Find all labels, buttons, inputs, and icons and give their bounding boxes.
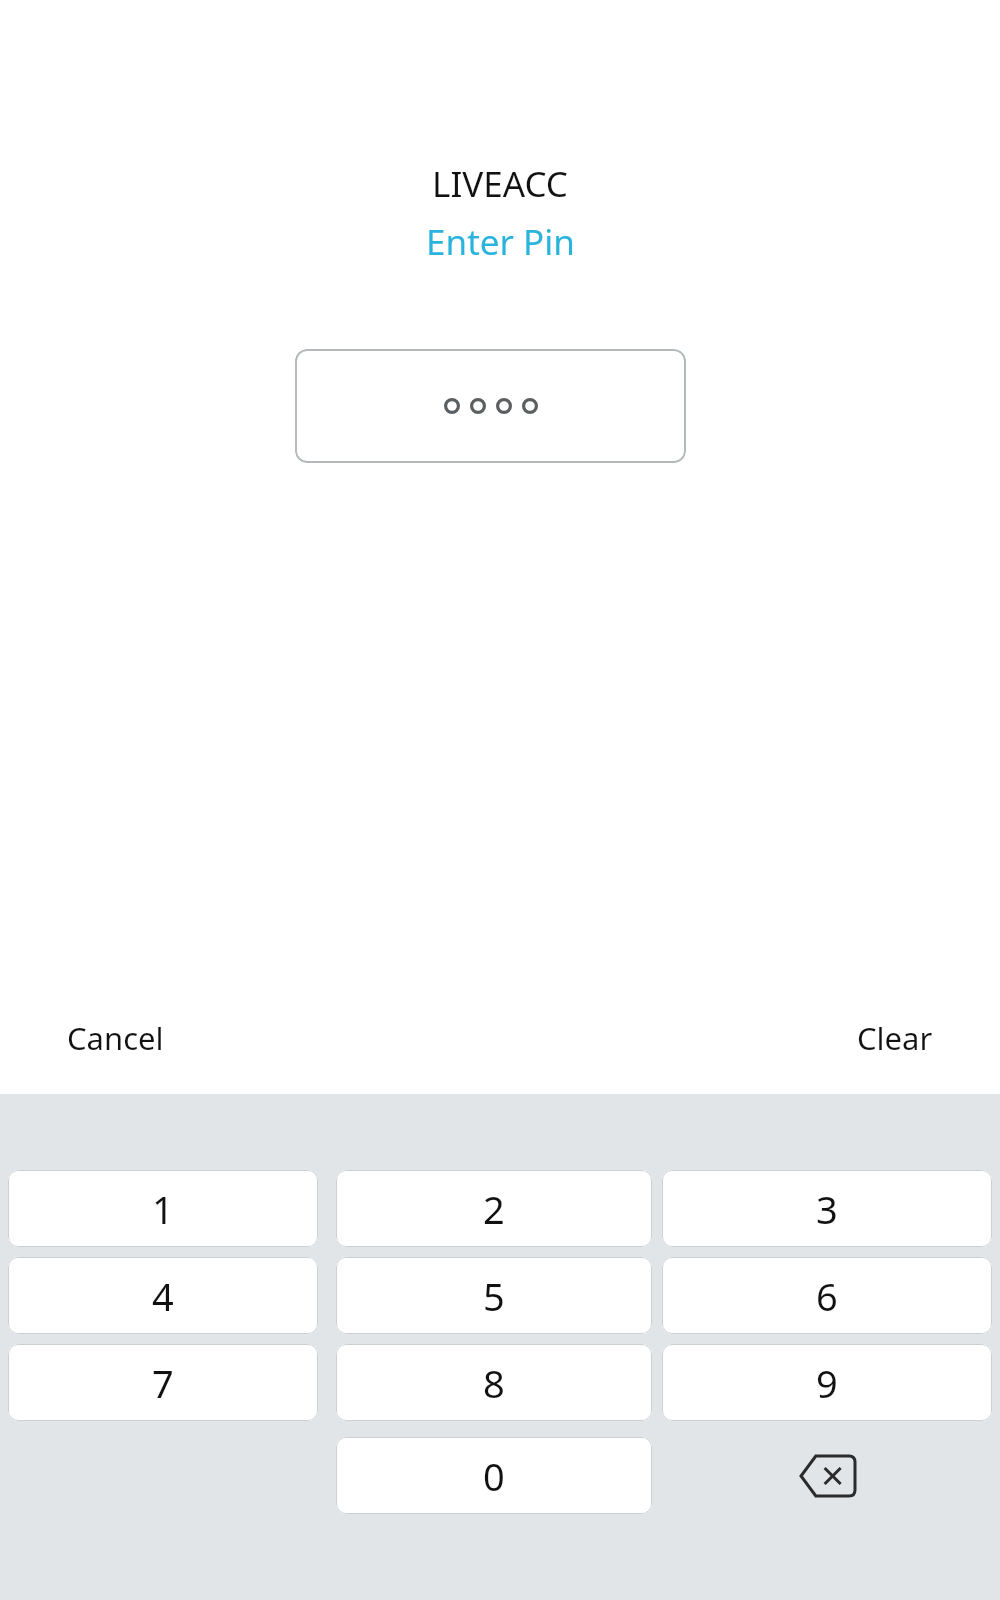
button[interactable]: Cancel bbox=[55, 1011, 176, 1065]
button[interactable]: 4 bbox=[8, 1257, 318, 1334]
staticText: 2 bbox=[483, 1183, 505, 1235]
button[interactable]: 7 bbox=[8, 1344, 318, 1421]
button[interactable] bbox=[295, 349, 686, 463]
staticText: 6 bbox=[816, 1270, 838, 1322]
button[interactable]: 5 bbox=[336, 1257, 652, 1334]
staticText: 7 bbox=[152, 1357, 174, 1409]
staticText: 8 bbox=[483, 1357, 505, 1409]
staticText: LIVEACC bbox=[432, 160, 568, 208]
staticText: Cancel bbox=[67, 1017, 164, 1059]
button[interactable]: 9 bbox=[662, 1344, 992, 1421]
staticText: 5 bbox=[483, 1270, 505, 1322]
staticText: 4 bbox=[152, 1270, 174, 1322]
button[interactable]: Backspace bbox=[662, 1437, 992, 1514]
staticText: 1 bbox=[152, 1183, 174, 1235]
staticText: Clear bbox=[857, 1017, 933, 1059]
button[interactable]: 2 bbox=[336, 1170, 652, 1247]
staticText: 9 bbox=[816, 1357, 838, 1409]
staticText: 3 bbox=[816, 1183, 838, 1235]
button[interactable]: 1 bbox=[8, 1170, 318, 1247]
staticText: 0 bbox=[483, 1450, 505, 1502]
button[interactable]: 6 bbox=[662, 1257, 992, 1334]
button[interactable]: 8 bbox=[336, 1344, 652, 1421]
button[interactable]: Clear bbox=[845, 1011, 945, 1065]
button[interactable]: 3 bbox=[662, 1170, 992, 1247]
button[interactable]: 0 bbox=[336, 1437, 652, 1514]
staticText: Enter Pin bbox=[426, 218, 575, 266]
